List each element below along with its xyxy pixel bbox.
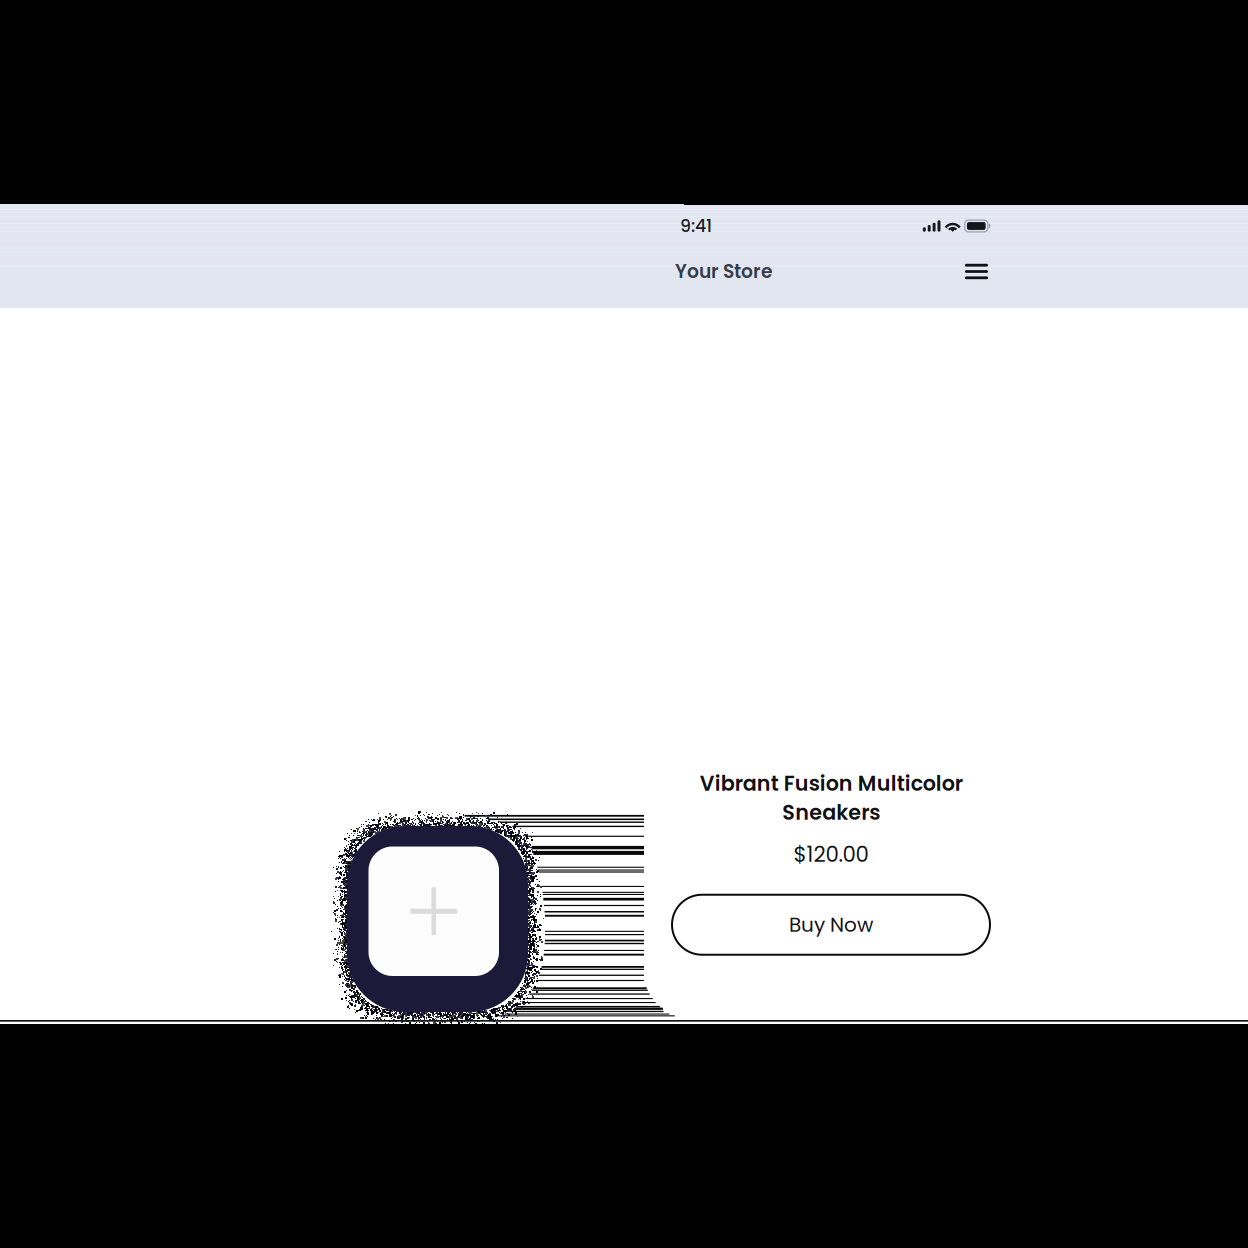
staticText: Buy Now: [789, 911, 873, 939]
staticText: 9:41: [680, 214, 712, 238]
button[interactable]: Menu: [959, 258, 994, 285]
staticText: Vibrant Fusion Multicolor Sneakers: [699, 769, 962, 827]
staticText: $120.00: [793, 839, 868, 869]
button[interactable]: Buy Now: [672, 895, 990, 955]
button[interactable]: Your Store: [675, 258, 773, 284]
staticText: Your Store: [675, 258, 773, 284]
